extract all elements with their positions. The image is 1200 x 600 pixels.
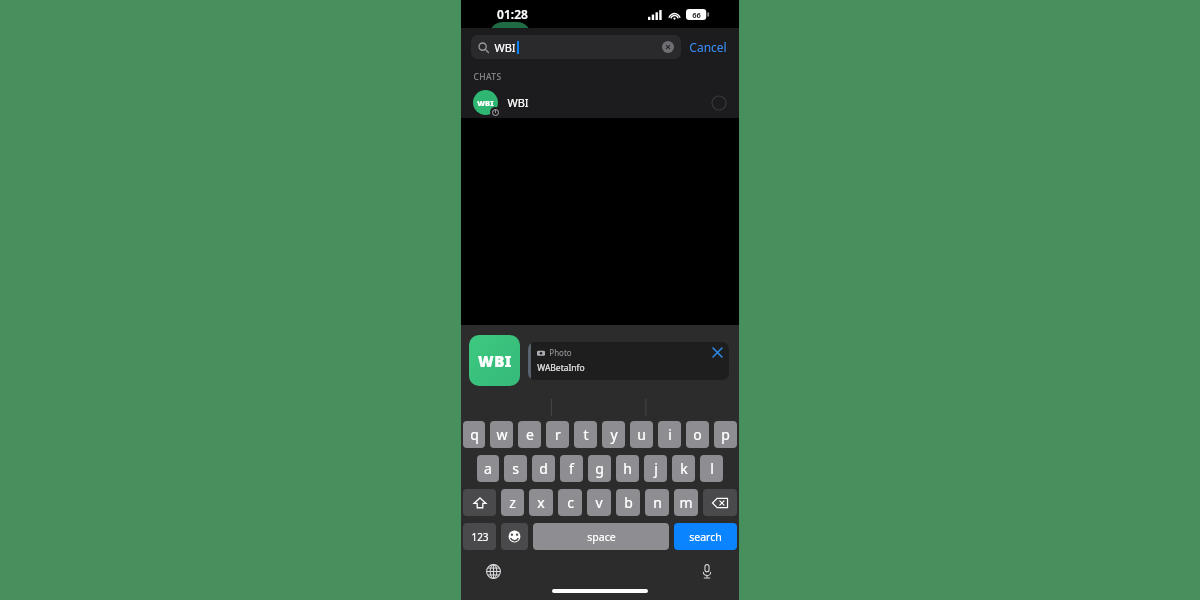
button[interactable]: space (533, 523, 669, 550)
staticText: 123 (471, 530, 489, 544)
staticText: r (555, 425, 561, 444)
staticText: m (679, 493, 693, 512)
staticText: s (512, 459, 519, 478)
staticText: b (624, 493, 633, 512)
staticText: f (569, 459, 574, 478)
button[interactable]: s (504, 455, 527, 482)
staticText: WBI (478, 351, 512, 371)
button[interactable]: Clear search (662, 41, 674, 53)
button[interactable]: Shift (463, 489, 496, 516)
button[interactable]: Backspace (703, 489, 737, 516)
button[interactable]: 123 (463, 523, 496, 550)
staticText: WABetaInfo (537, 362, 585, 374)
staticText: c (567, 493, 574, 512)
button[interactable]: Cancel (681, 36, 729, 58)
button[interactable]: search (674, 523, 737, 550)
staticText: Cancel (689, 39, 727, 55)
button[interactable]: Photo (528, 342, 729, 380)
button[interactable]: v (587, 489, 611, 516)
staticText: e (526, 425, 534, 444)
staticText: k (680, 459, 688, 478)
staticText: z (509, 493, 516, 512)
button[interactable]: i (658, 421, 681, 448)
button[interactable]: h (616, 455, 639, 482)
button[interactable]: b (616, 489, 640, 516)
button[interactable]: x (529, 489, 553, 516)
staticText: g (595, 459, 604, 478)
staticText: y (610, 425, 618, 444)
button[interactable]: o (686, 421, 709, 448)
staticText: o (693, 425, 702, 444)
staticText: h (623, 459, 632, 478)
staticText: i (668, 425, 672, 444)
button[interactable]: k (672, 455, 695, 482)
staticText: n (653, 493, 662, 512)
button[interactable]: z (501, 489, 524, 516)
staticText: j (654, 459, 658, 478)
button[interactable]: WBI (469, 335, 520, 386)
button[interactable]: n (645, 489, 669, 516)
staticText: a (484, 459, 492, 478)
staticText: WBI (494, 40, 516, 55)
button[interactable]: e (518, 421, 541, 448)
staticText: d (539, 459, 548, 478)
button[interactable]: f (560, 455, 583, 482)
button[interactable]: t (574, 421, 597, 448)
button[interactable]: d (532, 455, 555, 482)
button[interactable]: WBI (471, 35, 681, 59)
staticText: 66 (692, 10, 701, 20)
button[interactable]: Change keyboard (483, 561, 503, 581)
button[interactable]: WBI (461, 87, 739, 118)
staticText: l (710, 459, 714, 478)
button[interactable]: Remove attachment (711, 346, 724, 359)
button[interactable]: m (674, 489, 698, 516)
button[interactable]: c (558, 489, 582, 516)
button[interactable]: Emoji (501, 523, 528, 550)
button[interactable]: Select chat (711, 95, 727, 111)
staticText: search (689, 530, 722, 544)
staticText: w (496, 425, 508, 444)
button[interactable]: p (714, 421, 737, 448)
staticText: p (721, 425, 730, 444)
staticText: v (595, 493, 603, 512)
button[interactable]: w (490, 421, 513, 448)
staticText: t (583, 425, 589, 444)
button[interactable]: g (588, 455, 611, 482)
button[interactable]: u (630, 421, 653, 448)
staticText: WBI (507, 95, 529, 110)
button[interactable]: a (477, 455, 499, 482)
staticText: q (470, 425, 479, 444)
staticText: x (537, 493, 545, 512)
staticText: WBI (477, 98, 494, 108)
staticText: CHATS (473, 71, 502, 83)
staticText: Photo (549, 347, 572, 358)
button[interactable]: q (463, 421, 485, 448)
staticText: u (637, 425, 646, 444)
staticText: 01:28 (497, 6, 528, 22)
staticText: space (587, 530, 616, 544)
button[interactable]: r (546, 421, 569, 448)
button[interactable]: Dictate (697, 561, 717, 581)
button[interactable]: y (602, 421, 625, 448)
button[interactable]: l (700, 455, 723, 482)
button[interactable]: j (644, 455, 667, 482)
